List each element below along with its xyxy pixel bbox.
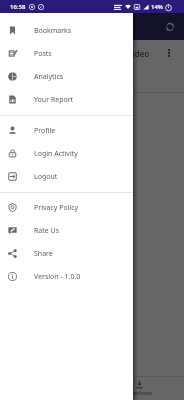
button[interactable]: Version - 1.0.0 <box>0 265 133 288</box>
button[interactable]: Analytics <box>0 65 133 88</box>
staticText: Video Downloader <box>44 21 123 33</box>
staticText: Your Report <box>34 95 74 105</box>
button[interactable]: Login Activity <box>0 142 133 165</box>
button[interactable]: Profile <box>0 119 133 142</box>
staticText: Profile <box>34 126 56 136</box>
button[interactable]: Privacy Policy <box>0 196 133 219</box>
button[interactable]: Share <box>0 242 133 265</box>
button[interactable]: Refresh <box>161 18 178 35</box>
button[interactable]: Easily download and store any Video <box>0 40 184 66</box>
staticText: Downloads <box>126 390 153 397</box>
staticText: Privacy Policy <box>34 203 79 213</box>
staticText: 16:58 <box>10 3 26 11</box>
staticText: Logout <box>34 172 58 182</box>
button[interactable]: Logout <box>0 165 133 188</box>
button[interactable]: Bookmarks <box>0 19 133 42</box>
staticText: Bookmarks <box>34 26 72 36</box>
staticText: Analytics <box>34 72 64 82</box>
staticText: Rate Us <box>34 226 60 236</box>
staticText: Easily download and store any Video <box>10 48 151 59</box>
staticText: Share <box>34 249 53 259</box>
staticText: Login Activity <box>34 149 78 159</box>
button[interactable]: Downloads <box>116 377 163 400</box>
button[interactable]: Your Report <box>0 88 133 111</box>
staticText: Posts <box>34 49 52 59</box>
button[interactable]: More options <box>160 44 178 62</box>
staticText: 14% <box>151 3 163 11</box>
button[interactable]: Posts <box>0 42 133 65</box>
button[interactable]: Rate Us <box>0 219 133 242</box>
staticText: Version - 1.0.0 <box>34 272 81 282</box>
